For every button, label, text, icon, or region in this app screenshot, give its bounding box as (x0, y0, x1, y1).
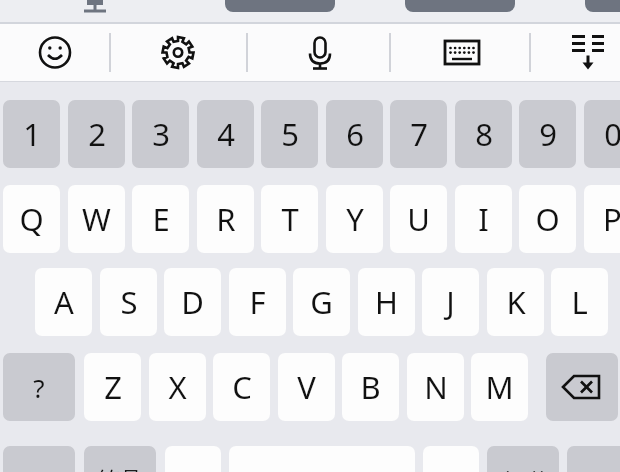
button[interactable]: M (471, 353, 528, 421)
button[interactable]: I (455, 185, 512, 253)
button[interactable]: 0 (584, 100, 620, 168)
button[interactable]: B (342, 353, 399, 421)
button[interactable]: Q (3, 185, 60, 253)
button[interactable]: Emoji (25, 27, 85, 78)
staticText: 6 (346, 113, 364, 155)
staticText: L (571, 281, 588, 323)
button[interactable]: E (132, 185, 189, 253)
button[interactable]: 2 (68, 100, 125, 168)
button[interactable]: Backspace (546, 353, 618, 421)
button[interactable]: F (229, 268, 286, 336)
staticText: M (485, 366, 514, 408)
staticText: ? (33, 370, 45, 405)
staticText: C (232, 366, 252, 408)
staticText: I (478, 198, 489, 240)
staticText: D (181, 281, 204, 323)
button[interactable]: 5 (261, 100, 318, 168)
staticText: 5 (281, 113, 299, 155)
staticText: K (506, 281, 526, 323)
button[interactable]: V (278, 353, 335, 421)
button[interactable]: U (390, 185, 447, 253)
button[interactable]: 中/英 (487, 446, 559, 472)
staticText: 1 (23, 113, 41, 155)
staticText: O (535, 198, 560, 240)
staticText: G (310, 281, 333, 323)
staticText: Q (19, 198, 44, 240)
staticText: S (120, 281, 138, 323)
button[interactable]: O (519, 185, 576, 253)
button[interactable]: Z (84, 353, 141, 421)
button[interactable]: Y (326, 185, 383, 253)
button[interactable]: R (197, 185, 254, 253)
button[interactable]: T (261, 185, 318, 253)
button[interactable]: K (487, 268, 544, 336)
button[interactable]: Voice input (290, 27, 350, 78)
staticText: 3 (152, 113, 170, 155)
staticText: F (249, 281, 266, 323)
button[interactable]: H (358, 268, 415, 336)
staticText: 9 (539, 113, 557, 155)
button[interactable]: 8 (455, 100, 512, 168)
button[interactable]: Settings (148, 27, 208, 78)
button[interactable]: 符号 (84, 446, 156, 472)
button[interactable]: Keyboard (432, 27, 492, 78)
staticText: T (281, 198, 299, 240)
button[interactable]: 7 (390, 100, 447, 168)
staticText: U (407, 198, 430, 240)
staticText: W (82, 198, 111, 240)
button[interactable]: ? (3, 353, 75, 421)
staticText: P (603, 198, 620, 240)
button[interactable]: D (164, 268, 221, 336)
button[interactable]: 3 (132, 100, 189, 168)
staticText: 7 (410, 113, 428, 155)
staticText: V (297, 366, 316, 408)
staticText: 8 (475, 113, 493, 155)
button[interactable]: 123 (3, 446, 75, 472)
button[interactable]: J (422, 268, 479, 336)
staticText: 中/英 (497, 465, 550, 472)
staticText: Z (104, 366, 122, 408)
staticText: 4 (217, 113, 235, 155)
button[interactable]: 6 (326, 100, 383, 168)
button[interactable]: A (35, 268, 92, 336)
staticText: 0 (604, 113, 620, 155)
staticText: J (446, 281, 455, 323)
button[interactable]: X (149, 353, 206, 421)
button[interactable]: S (100, 268, 157, 336)
staticText: R (216, 198, 236, 240)
staticText: B (360, 366, 381, 408)
staticText: X (168, 366, 187, 408)
staticText: 符号 (97, 466, 143, 472)
button[interactable]: 1 (3, 100, 60, 168)
staticText: Y (346, 198, 364, 240)
staticText: N (424, 366, 448, 408)
staticText: H (375, 281, 398, 323)
staticText: 2 (88, 113, 106, 155)
button[interactable]: L (551, 268, 608, 336)
button[interactable]: G (293, 268, 350, 336)
button[interactable]: 9 (519, 100, 576, 168)
button[interactable]: W (68, 185, 125, 253)
button[interactable]: 4 (197, 100, 254, 168)
button[interactable]: N (407, 353, 464, 421)
button[interactable]: P (584, 185, 620, 253)
button[interactable]: C (213, 353, 270, 421)
staticText: E (152, 198, 170, 240)
staticText: A (54, 281, 74, 323)
button[interactable]: Hide keyboard (558, 27, 618, 78)
